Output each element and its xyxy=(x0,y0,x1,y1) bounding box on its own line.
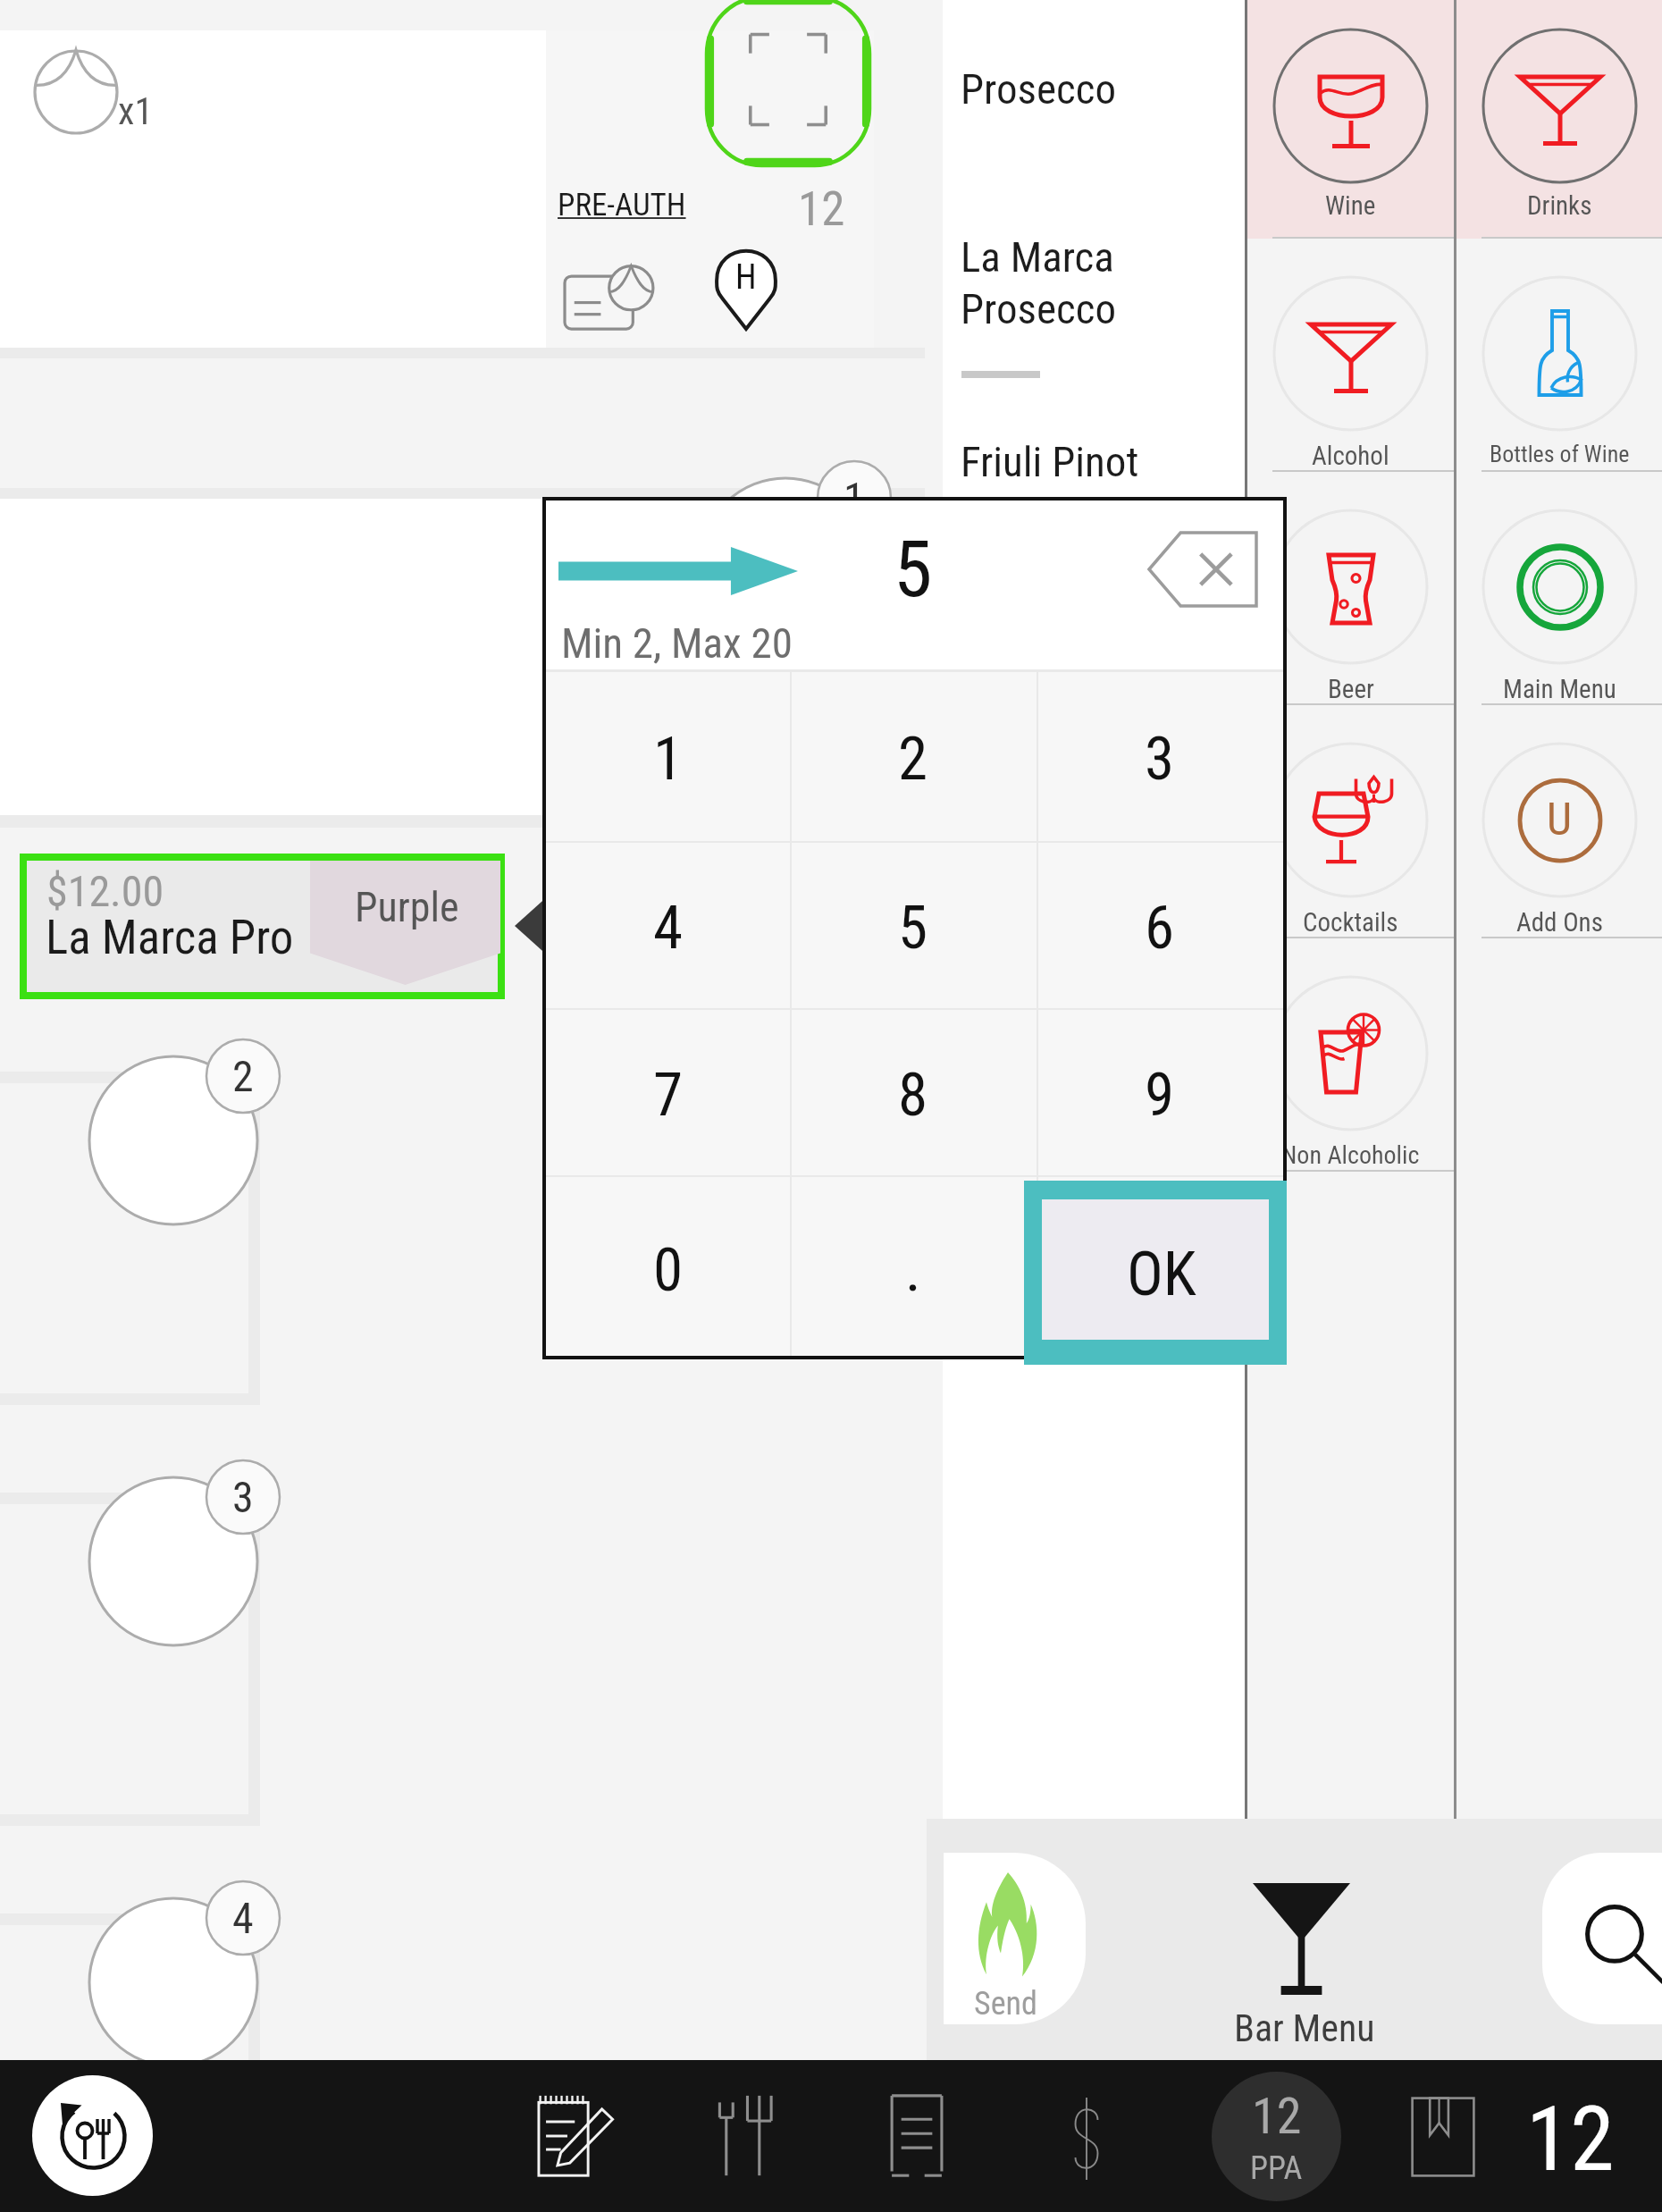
staticText: Bar Menu xyxy=(1234,2006,1375,2050)
button[interactable]: 9 xyxy=(1037,1008,1283,1175)
button[interactable]: La Marca Prosecco xyxy=(961,232,1116,333)
button[interactable]: Receipt xyxy=(889,2094,944,2178)
button[interactable]: Scan xyxy=(702,0,874,170)
button[interactable]: 3 xyxy=(1037,669,1283,841)
staticText: Alcohol xyxy=(1312,441,1389,471)
staticText: Bottles of Wine xyxy=(1490,441,1630,467)
button[interactable]: 0 xyxy=(546,1175,790,1358)
button[interactable]: 5 xyxy=(790,841,1037,1008)
button[interactable]: Prosecco xyxy=(961,64,1116,114)
button[interactable]: U xyxy=(1456,705,1662,938)
button[interactable]: Beer xyxy=(1247,472,1454,705)
staticText: 8 xyxy=(898,1060,928,1131)
staticText: 3 xyxy=(232,1472,254,1522)
button[interactable]: 6 xyxy=(1037,841,1283,1008)
button[interactable]: Payment xyxy=(1065,2096,1108,2182)
button[interactable]: Search xyxy=(1542,1853,1662,2024)
button[interactable] xyxy=(88,1897,259,2068)
button[interactable]: 7 xyxy=(546,1008,790,1175)
staticText: Min 2, Max 20 xyxy=(561,618,793,668)
staticText: 4 xyxy=(232,1893,254,1943)
button[interactable]: PRE-AUTH xyxy=(558,187,686,223)
staticText: Drinks xyxy=(1527,190,1592,221)
button[interactable]: Reorder xyxy=(32,2075,153,2196)
staticText: 4 xyxy=(653,893,684,963)
staticText: Non Alcoholic xyxy=(1281,1140,1420,1170)
staticText: Send xyxy=(974,1985,1037,2023)
staticText: x1 xyxy=(118,89,154,133)
staticText: OK xyxy=(1127,1239,1196,1310)
button[interactable]: Friuli Pinot Grigio xyxy=(961,437,1139,538)
button[interactable] xyxy=(88,1476,259,1647)
button[interactable]: OK xyxy=(1042,1199,1269,1340)
button[interactable]: Bar Menu xyxy=(1221,1871,1382,2085)
button[interactable]: Cocktails xyxy=(1247,705,1454,938)
button[interactable]: 12 xyxy=(1519,2087,1622,2176)
staticText: PPA xyxy=(1250,2149,1303,2187)
staticText: La Marca Pro xyxy=(46,910,294,965)
button[interactable]: 4 xyxy=(546,841,790,1008)
staticText: Main Menu xyxy=(1503,674,1616,704)
button[interactable]: Bookmark xyxy=(1410,2096,1476,2178)
button[interactable]: 2 xyxy=(790,669,1037,841)
staticText: Wine xyxy=(1325,190,1376,221)
staticText: Purple xyxy=(355,883,459,931)
staticText: 5 xyxy=(898,893,928,963)
staticText: U xyxy=(1547,794,1573,846)
staticText: 9 xyxy=(1145,1060,1175,1131)
staticText: Add Ons xyxy=(1516,907,1603,938)
staticText: . xyxy=(905,1235,921,1306)
button[interactable]: Non Alcoholic xyxy=(1247,938,1454,1172)
button[interactable]: . xyxy=(790,1175,1037,1358)
staticText: $12.00 xyxy=(46,866,164,916)
button[interactable]: 12 xyxy=(1212,2072,1341,2201)
button[interactable]: Notes xyxy=(536,2094,618,2178)
staticText: H xyxy=(735,257,757,298)
staticText: 3 xyxy=(1145,724,1175,795)
staticText: 1 xyxy=(653,724,684,795)
button[interactable]: $12.00 xyxy=(27,861,498,992)
button[interactable] xyxy=(88,1055,259,1226)
staticText: 2 xyxy=(898,724,928,795)
button[interactable]: 1 xyxy=(546,669,790,841)
staticText: 12 xyxy=(1526,2087,1615,2176)
staticText: 6 xyxy=(1145,893,1175,963)
staticText: 5 xyxy=(894,523,933,615)
button[interactable]: 8 xyxy=(790,1008,1037,1175)
staticText: 0 xyxy=(653,1235,684,1306)
staticText: 12 xyxy=(798,181,845,237)
button[interactable]: Backspace xyxy=(1147,531,1258,608)
button[interactable]: Alcohol xyxy=(1247,239,1454,472)
button[interactable]: Wine xyxy=(1247,0,1454,239)
button[interactable]: Courses xyxy=(713,2094,779,2178)
staticText: 12 xyxy=(1252,2087,1302,2146)
button[interactable]: Send xyxy=(944,1853,1086,2024)
staticText: 1 xyxy=(844,473,865,523)
staticText: 2 xyxy=(232,1051,254,1101)
button[interactable]: Drinks xyxy=(1456,0,1662,239)
staticText: Beer xyxy=(1328,674,1374,704)
button[interactable]: Bottles of Wine xyxy=(1456,239,1662,472)
button[interactable]: Main Menu xyxy=(1456,472,1662,705)
staticText: 7 xyxy=(653,1060,684,1131)
staticText: Cocktails xyxy=(1303,907,1398,938)
